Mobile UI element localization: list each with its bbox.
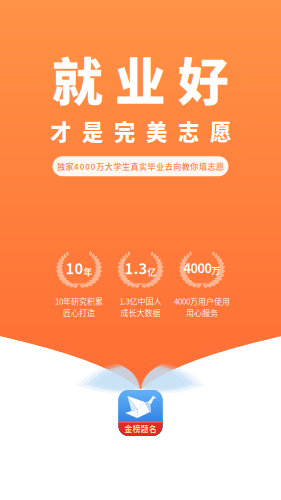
staticText: 4000万用户使用 bbox=[174, 295, 230, 307]
staticText: 4000 bbox=[183, 259, 211, 277]
staticText: 就业好 bbox=[52, 42, 229, 115]
staticText: 1.3 bbox=[124, 257, 147, 278]
staticText: 匠心打造 bbox=[63, 307, 95, 318]
staticText: 10 bbox=[65, 257, 83, 278]
staticText: 亿 bbox=[147, 265, 156, 278]
staticText: 用心服务 bbox=[186, 307, 218, 318]
staticText: 万 bbox=[211, 264, 220, 276]
staticText: 独家4000万大学生真实毕业去向教你填志愿 bbox=[57, 160, 224, 172]
staticText: 1.3亿中国人 bbox=[119, 295, 161, 307]
staticText: 10年研究积累 bbox=[55, 295, 103, 307]
staticText: 成长大数据 bbox=[120, 307, 160, 318]
staticText: 才是完美志愿 bbox=[50, 115, 231, 146]
staticText: 年 bbox=[83, 265, 92, 278]
staticText: 金榜题名 bbox=[124, 423, 157, 434]
